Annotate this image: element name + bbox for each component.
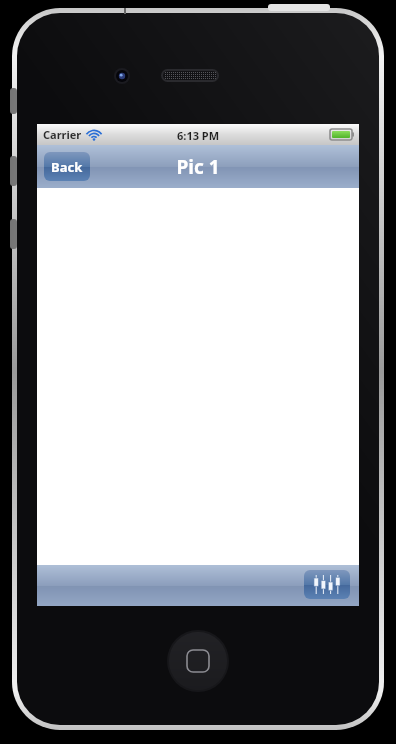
button[interactable]: Adjust settings [304,570,350,599]
staticText: 6:13 PM [177,128,220,143]
staticText: Pic 1 [176,154,220,180]
staticText: Back [51,158,83,176]
button[interactable]: Back [44,152,90,181]
staticText: Carrier [43,127,82,142]
